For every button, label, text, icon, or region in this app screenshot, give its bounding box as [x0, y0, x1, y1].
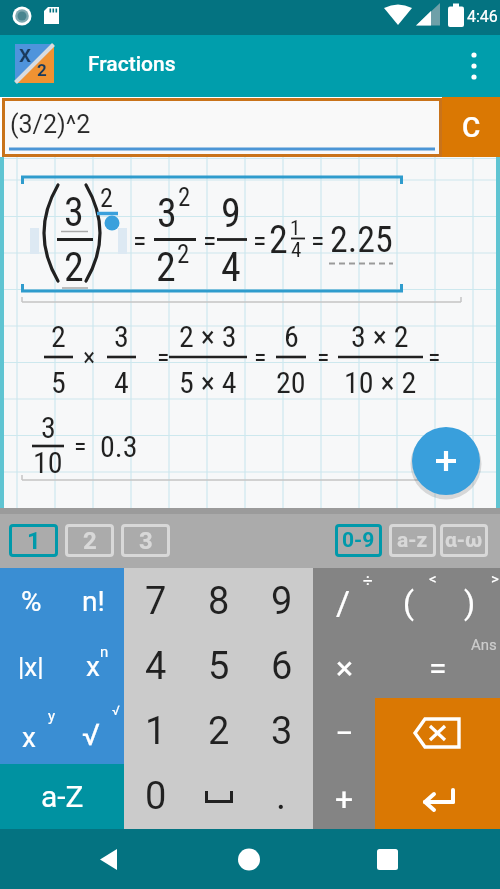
button[interactable]: n!	[62, 568, 124, 634]
button[interactable]: 4	[124, 634, 187, 699]
button[interactable]	[187, 764, 250, 829]
button[interactable]: a-Z	[0, 764, 124, 829]
button[interactable]: C	[442, 97, 500, 157]
button[interactable]: 7	[124, 568, 187, 634]
staticText: 2	[37, 60, 47, 80]
button[interactable]	[313, 568, 375, 633]
staticText: 3	[41, 410, 56, 445]
staticText: 2.25	[330, 219, 393, 261]
staticText: n	[100, 643, 109, 661]
staticText: −	[335, 714, 354, 752]
staticText: 2	[177, 240, 190, 269]
staticText: 2	[208, 709, 230, 754]
staticText: 10	[33, 445, 63, 480]
staticText: 0	[145, 774, 167, 819]
staticText: =	[317, 342, 330, 372]
button[interactable]	[313, 764, 375, 829]
staticText: 4	[145, 644, 167, 689]
staticText: x	[22, 721, 36, 754]
staticText: =	[133, 224, 147, 257]
button[interactable]: .	[250, 764, 313, 829]
staticText: |x|	[18, 652, 44, 682]
button[interactable]: 3	[250, 699, 313, 764]
button[interactable]: √	[62, 699, 124, 764]
staticText: 8	[208, 579, 230, 624]
staticText: 3 × 2	[351, 319, 409, 354]
button[interactable]	[375, 698, 500, 764]
staticText: 2 × 3	[179, 319, 237, 354]
button[interactable]: %	[0, 568, 62, 634]
button[interactable]	[412, 427, 480, 495]
button[interactable]: a-z	[389, 524, 436, 557]
staticText: n!	[82, 585, 105, 618]
button[interactable]: 8	[187, 568, 250, 634]
button[interactable]	[229, 839, 269, 879]
staticText: ×	[83, 342, 96, 372]
button[interactable]: 5	[187, 634, 250, 699]
button[interactable]: 3	[121, 524, 170, 557]
staticText: 7	[145, 579, 167, 624]
staticText: a-Z	[41, 779, 84, 814]
button[interactable]: X	[15, 44, 54, 83]
staticText: 20	[276, 365, 306, 400]
staticText: X	[19, 44, 32, 66]
staticText: ×	[336, 649, 354, 687]
button[interactable]: |x|	[0, 634, 62, 699]
button[interactable]	[367, 839, 407, 879]
staticText: 6	[284, 319, 299, 354]
button[interactable]	[375, 633, 500, 698]
staticText: 2	[64, 244, 84, 291]
staticText: 4	[114, 365, 129, 400]
button[interactable]: 1	[9, 524, 58, 557]
button[interactable]	[88, 839, 128, 879]
button[interactable]: 0	[124, 764, 187, 829]
button[interactable]	[375, 568, 437, 633]
staticText: =	[428, 342, 441, 372]
staticText: 2	[156, 244, 176, 291]
button[interactable]: 2	[65, 524, 114, 557]
button[interactable]	[313, 698, 375, 764]
staticText: 5	[208, 644, 230, 689]
button[interactable]: 1	[124, 699, 187, 764]
staticText: (3/2)^2	[10, 110, 91, 139]
staticText: .	[276, 774, 287, 819]
staticText: 6	[271, 644, 293, 689]
staticText: 5	[51, 365, 66, 400]
staticText: 1	[27, 527, 41, 555]
button[interactable]: 9	[250, 568, 313, 634]
staticText: 2	[269, 218, 288, 263]
staticText: 0-9	[342, 528, 375, 553]
button[interactable]: 6	[250, 634, 313, 699]
staticText: +	[335, 780, 354, 818]
staticText: 2	[178, 183, 191, 212]
button[interactable]	[375, 764, 500, 829]
button[interactable]	[458, 50, 490, 82]
staticText: 9	[271, 579, 293, 624]
button[interactable]: α-ω	[440, 524, 488, 557]
staticText: α-ω	[445, 528, 483, 553]
staticText: (	[403, 584, 414, 622]
staticText: 3	[114, 319, 129, 354]
staticText: =	[157, 342, 170, 372]
button[interactable]	[313, 633, 375, 698]
button[interactable]: 0-9	[335, 524, 382, 557]
button[interactable]	[437, 568, 500, 633]
staticText: 5 × 4	[179, 365, 237, 400]
staticText: =	[253, 224, 267, 257]
staticText: 4:46	[467, 7, 498, 26]
staticText: 2	[100, 183, 113, 213]
button[interactable]: (3/2)^2	[2, 98, 442, 157]
staticText: 2	[83, 527, 97, 555]
staticText: √	[112, 703, 120, 718]
button[interactable]: 2	[187, 699, 250, 764]
staticText: <	[429, 570, 437, 588]
staticText: C	[462, 111, 481, 144]
staticText: Ans	[471, 636, 497, 654]
staticText: )	[464, 584, 476, 622]
button[interactable]: x	[62, 634, 124, 699]
staticText: =	[311, 224, 325, 257]
button[interactable]: x	[0, 699, 62, 764]
staticText: 3	[271, 709, 293, 754]
staticText: %	[21, 585, 42, 618]
staticText: 4	[221, 244, 241, 291]
